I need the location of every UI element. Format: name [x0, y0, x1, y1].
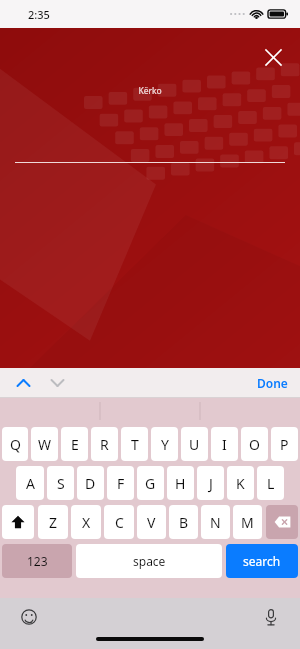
staticText: Kërko: [138, 85, 162, 97]
button[interactable]: L: [257, 466, 284, 500]
button[interactable]: D: [77, 466, 104, 500]
button[interactable]: R: [91, 427, 118, 461]
button[interactable]: K: [227, 466, 254, 500]
button[interactable]: search: [226, 544, 298, 578]
staticText: 123: [27, 553, 48, 569]
button[interactable]: T: [121, 427, 148, 461]
button[interactable]: Previous field: [10, 370, 36, 396]
button[interactable]: Kërko: [0, 85, 300, 97]
staticText: N: [210, 513, 221, 532]
button[interactable]: Q: [2, 427, 28, 461]
button[interactable]: 123: [2, 544, 72, 578]
staticText: P: [280, 435, 289, 454]
staticText: O: [249, 435, 260, 454]
staticText: Done: [257, 375, 288, 391]
staticText: Z: [49, 513, 58, 532]
staticText: E: [71, 435, 79, 454]
button[interactable]: Next field: [44, 370, 70, 396]
button[interactable]: Dictation: [258, 604, 284, 630]
button[interactable]: Backspace: [266, 505, 298, 539]
button[interactable]: I: [211, 427, 238, 461]
button[interactable]: Shift: [2, 505, 34, 539]
button[interactable]: Y: [151, 427, 178, 461]
staticText: M: [241, 513, 254, 532]
staticText: T: [131, 435, 139, 454]
button[interactable]: O: [241, 427, 268, 461]
staticText: Y: [161, 435, 169, 454]
staticText: C: [115, 513, 124, 532]
staticText: H: [175, 474, 186, 493]
staticText: search: [243, 553, 281, 569]
button[interactable]: Emoji: [16, 604, 42, 630]
staticText: S: [57, 474, 65, 493]
button[interactable]: V: [137, 505, 166, 539]
staticText: R: [100, 435, 109, 454]
staticText: Q: [10, 435, 21, 454]
button[interactable]: J: [197, 466, 224, 500]
staticText: U: [189, 435, 200, 454]
staticText: I: [222, 435, 227, 454]
button[interactable]: C: [104, 505, 134, 539]
button[interactable]: E: [61, 427, 88, 461]
button[interactable]: G: [137, 466, 164, 500]
button[interactable]: H: [167, 466, 194, 500]
staticText: J: [209, 474, 213, 493]
button[interactable]: A: [16, 466, 44, 500]
button[interactable]: Z: [38, 505, 68, 539]
button[interactable]: X: [71, 505, 101, 539]
staticText: A: [26, 474, 35, 493]
button[interactable]: W: [31, 427, 58, 461]
staticText: X: [82, 513, 91, 532]
staticText: B: [179, 513, 189, 532]
button[interactable]: Close: [260, 44, 286, 70]
button[interactable]: Done: [257, 375, 288, 391]
staticText: G: [145, 474, 156, 493]
button[interactable]: M: [233, 505, 262, 539]
staticText: L: [267, 474, 275, 493]
button[interactable]: N: [201, 505, 230, 539]
button[interactable]: space: [76, 544, 222, 578]
staticText: K: [236, 474, 245, 493]
button[interactable]: U: [181, 427, 208, 461]
staticText: V: [147, 513, 156, 532]
staticText: D: [85, 474, 96, 493]
button[interactable]: B: [169, 505, 198, 539]
button[interactable]: S: [47, 466, 74, 500]
staticText: W: [38, 435, 52, 454]
staticText: space: [133, 553, 166, 569]
staticText: 2:35: [28, 7, 50, 22]
button[interactable]: F: [107, 466, 134, 500]
button[interactable]: P: [271, 427, 298, 461]
staticText: F: [117, 474, 125, 493]
